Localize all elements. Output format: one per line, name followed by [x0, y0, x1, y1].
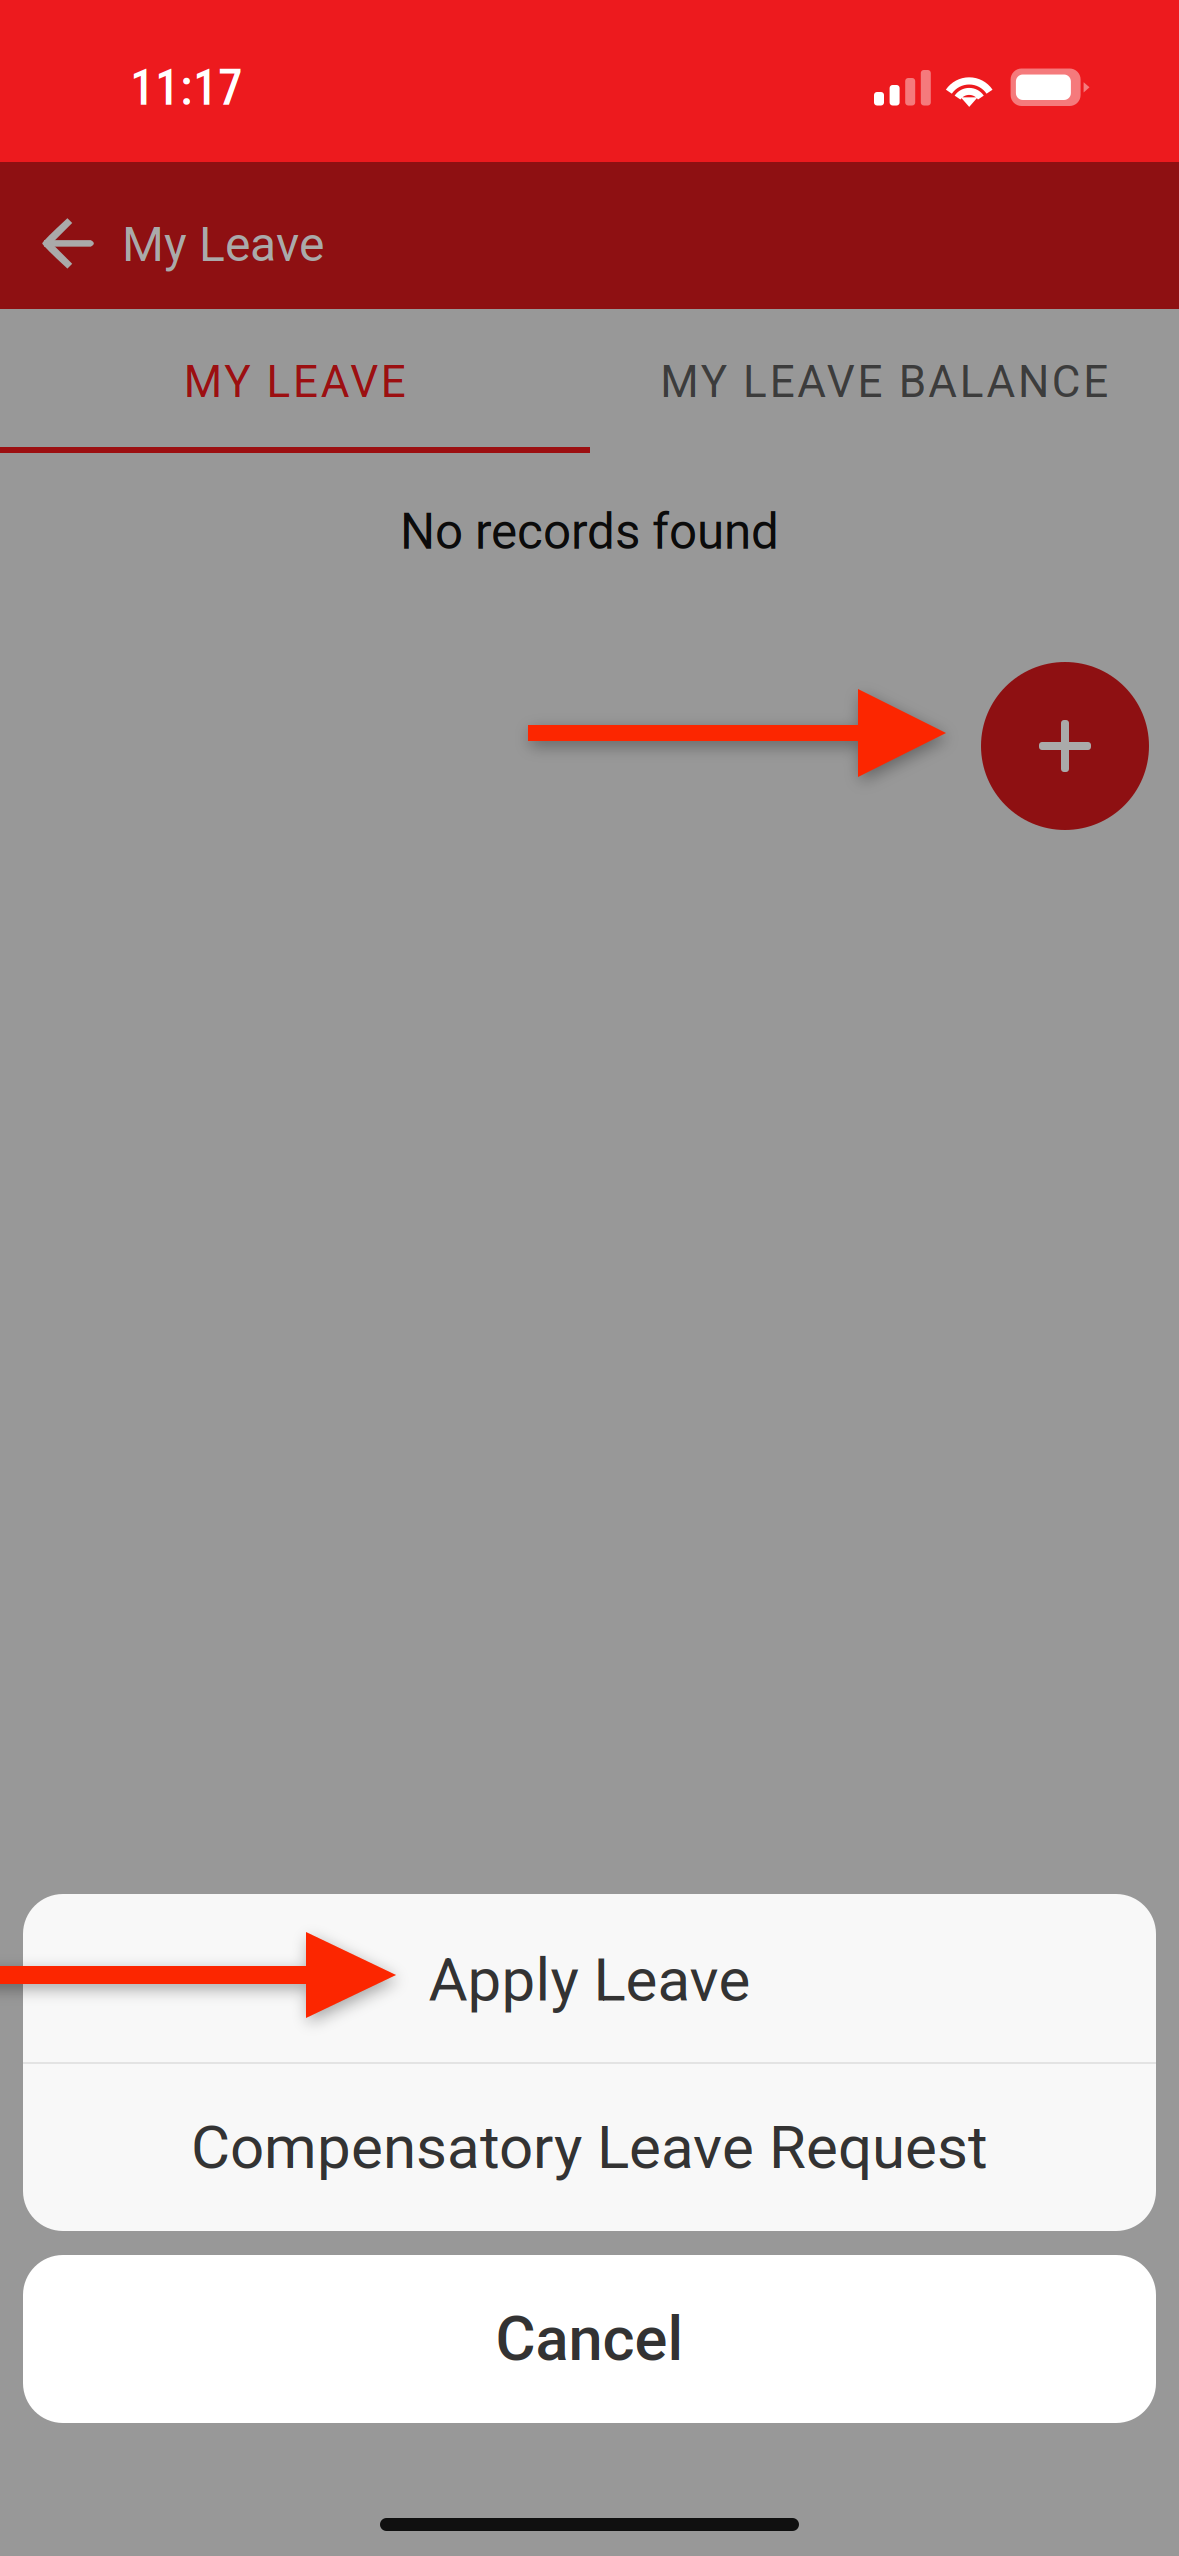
staticText: 11:17 [130, 59, 243, 117]
button[interactable]: Compensatory Leave Request [23, 2064, 1156, 2231]
staticText: My Leave [122, 216, 324, 273]
staticText: MY LEAVE [184, 356, 406, 408]
button[interactable]: Cancel [23, 2255, 1156, 2423]
button[interactable]: MY LEAVE [0, 313, 589, 451]
button[interactable]: Apply Leave [23, 1894, 1156, 2062]
staticText: Compensatory Leave Request [191, 2112, 988, 2183]
button[interactable]: Add [981, 662, 1149, 830]
button[interactable]: MY LEAVE BALANCE [589, 313, 1179, 451]
staticText: No records found [400, 503, 779, 561]
staticText: Cancel [495, 2303, 683, 2375]
button[interactable]: Back [31, 162, 391, 309]
staticText: MY LEAVE BALANCE [660, 356, 1108, 408]
staticText: Apply Leave [428, 1945, 750, 2015]
